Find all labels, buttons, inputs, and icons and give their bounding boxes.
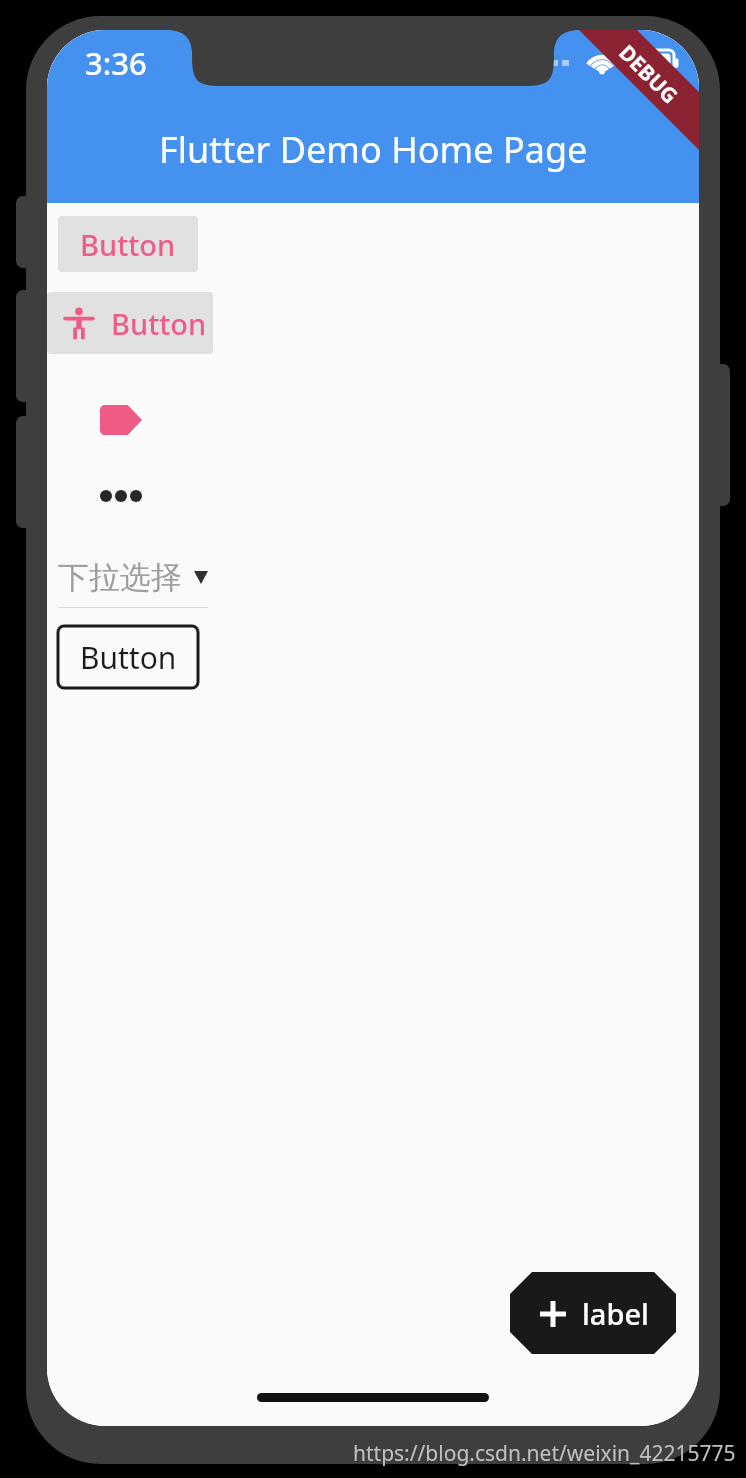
staticText: Flutter Demo Home Page [159,125,588,174]
button[interactable]: 下拉选择 [58,546,208,608]
staticText: label [582,1294,649,1333]
staticText: 3:36 [85,42,147,84]
button[interactable]: label [510,1272,676,1354]
staticText: Button [80,637,177,678]
button[interactable]: Button [58,626,198,688]
button[interactable]: Label [93,392,149,448]
button[interactable]: Button [47,292,213,354]
staticText: DEBUG [612,38,684,110]
staticText: https://blog.csdn.net/weixin_42215775 [353,1439,736,1468]
button[interactable]: Button [58,216,198,272]
staticText: Button [80,225,176,264]
staticText: 下拉选择 [58,558,182,597]
staticText: Button [111,304,207,343]
button[interactable]: More options [93,468,149,524]
